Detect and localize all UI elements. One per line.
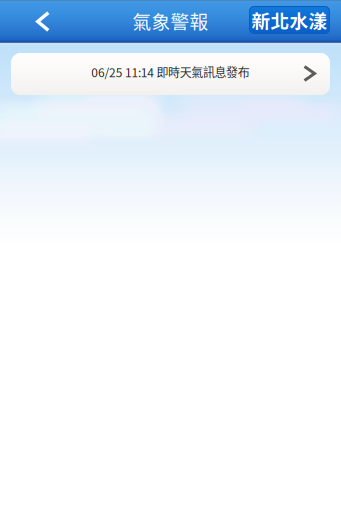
button[interactable]: Back xyxy=(0,0,60,43)
staticText: 氣象警報 xyxy=(132,7,208,34)
button[interactable]: 06/25 11:14 即時天氣訊息發布 xyxy=(11,53,330,95)
button[interactable]: 新北水漾 xyxy=(249,6,330,34)
staticText: 06/25 11:14 即時天氣訊息發布 xyxy=(91,63,250,81)
staticText: 新北水漾 xyxy=(251,6,327,33)
